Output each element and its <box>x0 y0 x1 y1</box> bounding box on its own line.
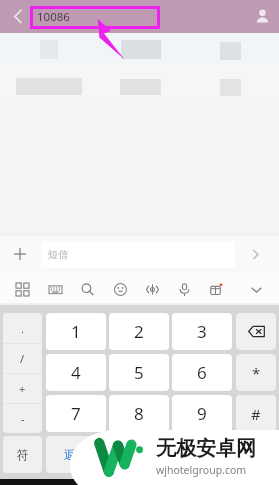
button[interactable]: . <box>3 313 42 343</box>
staticText: 5 <box>134 361 144 384</box>
button[interactable]: Themes <box>201 275 229 303</box>
button[interactable]: Apps <box>8 275 36 303</box>
button[interactable]: Back <box>0 0 33 33</box>
button[interactable]: / <box>3 344 42 373</box>
staticText: 2 <box>134 320 144 343</box>
staticText: - <box>21 411 25 426</box>
button[interactable]: Emoji <box>106 275 134 303</box>
button[interactable]: Keyboard <box>41 275 69 303</box>
button[interactable]: Select text <box>138 275 166 303</box>
staticText: 发送 <box>245 448 267 462</box>
button[interactable]: # <box>236 395 276 432</box>
button[interactable]: Backspace <box>236 313 276 350</box>
button[interactable]: 3 <box>172 313 232 350</box>
staticText: . <box>21 321 24 336</box>
staticText: + <box>19 381 26 396</box>
staticText: 符 <box>17 447 29 462</box>
button[interactable]: 4 <box>46 354 106 391</box>
button[interactable]: - <box>3 404 42 433</box>
button[interactable]: Search <box>73 275 101 303</box>
staticText: wjhotelgroup.com <box>156 463 247 477</box>
staticText: * <box>252 363 261 383</box>
button[interactable]: 符 <box>3 436 42 473</box>
staticText: # <box>251 404 261 424</box>
staticText: / <box>20 351 25 366</box>
button[interactable]: Voice input <box>170 275 198 303</box>
button[interactable]: 9 <box>172 395 232 432</box>
button[interactable]: 2 <box>109 313 169 350</box>
button[interactable]: Hide keyboard <box>242 275 270 303</box>
button[interactable]: 7 <box>46 395 106 432</box>
staticText: 3 <box>197 320 207 343</box>
staticText: 无极安卓网 <box>156 436 256 461</box>
button[interactable]: 0 <box>110 436 232 473</box>
staticText: 1 <box>71 320 81 343</box>
staticText: 10086 <box>37 9 70 25</box>
button[interactable]: 8 <box>109 395 169 432</box>
button[interactable]: * <box>236 354 276 391</box>
button[interactable]: 发送 <box>236 436 276 473</box>
staticText: 0 <box>166 443 176 466</box>
button[interactable]: 6 <box>172 354 232 391</box>
button[interactable]: 1 <box>46 313 106 350</box>
staticText: 6 <box>197 361 207 384</box>
staticText: 4 <box>71 361 81 384</box>
staticText: 8 <box>134 402 144 425</box>
button[interactable]: Send <box>240 239 270 269</box>
button[interactable]: 短信 <box>41 241 235 268</box>
staticText: 返回 <box>64 447 88 462</box>
button[interactable]: Contact <box>246 0 279 33</box>
staticText: 9 <box>197 402 207 425</box>
button[interactable]: Add <box>5 239 35 269</box>
button[interactable]: 返回 <box>46 436 106 473</box>
staticText: 短信 <box>48 248 68 261</box>
button[interactable]: 5 <box>109 354 169 391</box>
staticText: 7 <box>71 402 81 425</box>
button[interactable]: + <box>3 374 42 403</box>
